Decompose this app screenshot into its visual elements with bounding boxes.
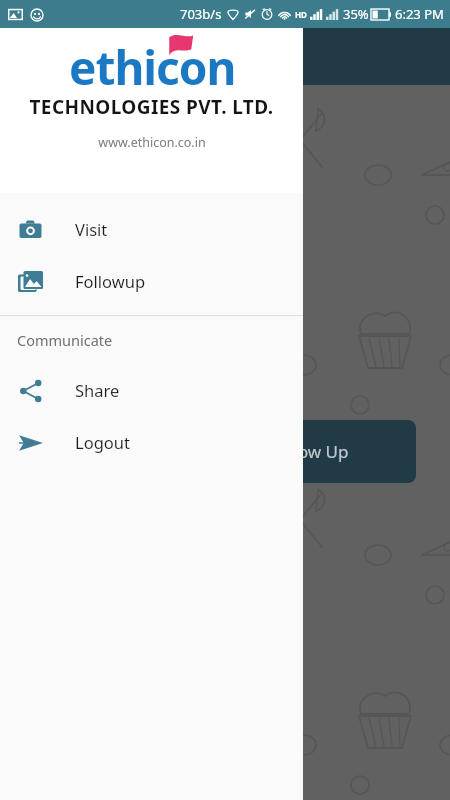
other: Visit	[18, 217, 43, 242]
staticText: Share	[75, 379, 120, 401]
button[interactable]: Follow Up	[110, 420, 416, 483]
staticText: 703b/s	[180, 5, 222, 23]
staticText: 6:23 PM	[395, 5, 444, 23]
staticText: Followup	[75, 270, 146, 292]
staticText: ethicon	[69, 36, 236, 88]
button[interactable]: Share	[0, 364, 303, 416]
staticText: Logout	[75, 431, 130, 453]
button[interactable]: Visit	[0, 203, 303, 255]
staticText: HD	[295, 9, 307, 20]
button[interactable]: Followup	[0, 255, 303, 307]
other: Share	[19, 379, 43, 403]
other: Followup	[18, 269, 43, 294]
staticText: Visit	[75, 218, 108, 240]
staticText: 35%	[343, 5, 369, 23]
staticText: Follow Up	[270, 440, 349, 463]
staticText: Communicate	[17, 330, 113, 350]
other: Logout	[18, 430, 44, 456]
staticText: TECHNOLOGIES PVT. LTD.	[29, 94, 274, 120]
staticText: www.ethicon.co.in	[98, 134, 206, 151]
button[interactable]: Logout	[0, 416, 303, 468]
